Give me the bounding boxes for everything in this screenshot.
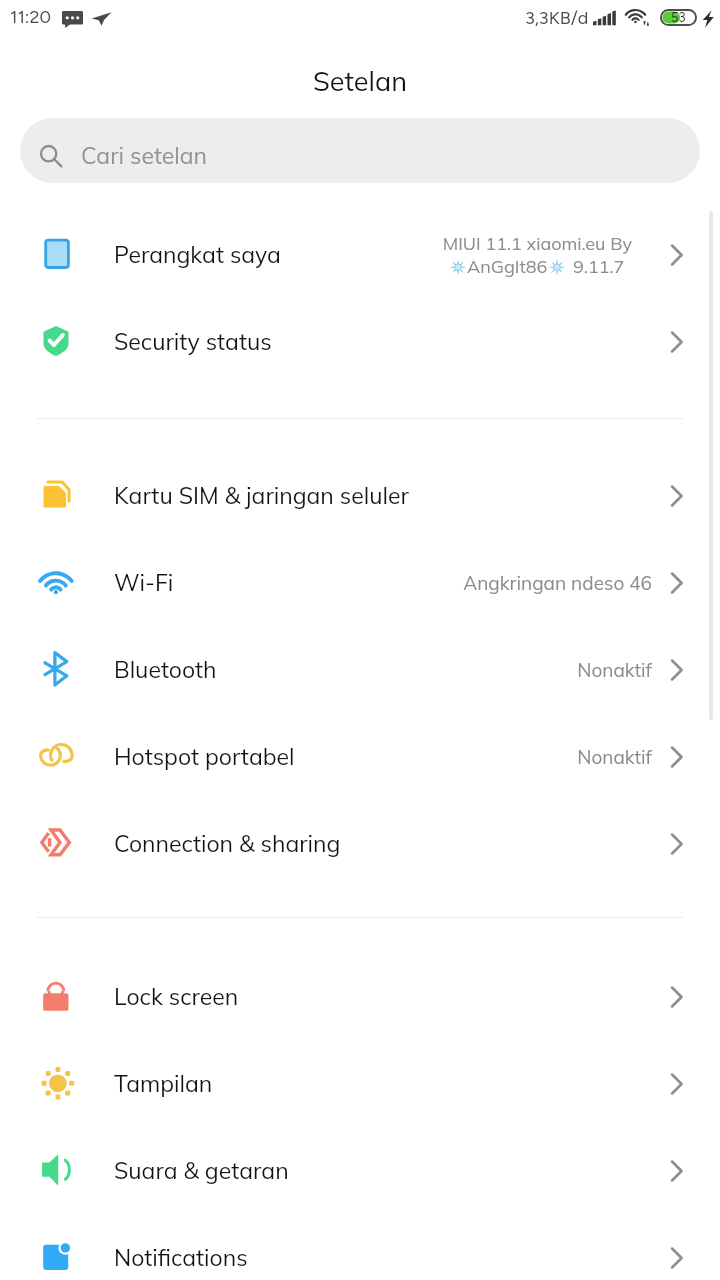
staticText: Nonaktif (577, 658, 652, 682)
button[interactable]: Security status (0, 298, 720, 385)
staticText: 53 (671, 10, 686, 26)
staticText: Connection & sharing (114, 829, 341, 858)
staticText: AnGgIt86 (467, 255, 548, 278)
staticText: Notifications (114, 1243, 248, 1272)
staticText: Suara & getaran (114, 1156, 289, 1185)
staticText: Bluetooth (114, 655, 217, 684)
staticText: Perangkat saya (114, 240, 281, 269)
button[interactable]: Tampilan (0, 1040, 720, 1127)
staticText: Kartu SIM & jaringan seluler (114, 481, 409, 510)
staticText: Angkringan ndeso 46 (463, 571, 652, 595)
staticText: Cari setelan (81, 141, 208, 170)
button[interactable]: Notifications (0, 1214, 720, 1280)
button[interactable]: Kartu SIM & jaringan seluler (0, 452, 720, 539)
staticText: Setelan (313, 64, 407, 98)
button[interactable]: Suara & getaran (0, 1127, 720, 1214)
staticText: 9.11.7 (573, 255, 625, 278)
staticText: Wi-Fi (114, 568, 174, 597)
staticText: Security status (114, 327, 272, 356)
staticText: Tampilan (114, 1069, 213, 1098)
button[interactable]: Hotspot portabel (0, 713, 720, 800)
staticText: 11:20 (10, 6, 52, 28)
staticText: Hotspot portabel (114, 742, 295, 771)
button[interactable]: Cari setelan (20, 118, 700, 183)
staticText: MIUI 11.1 xiaomi.eu By (442, 232, 632, 255)
staticText: Nonaktif (577, 745, 652, 769)
button[interactable]: Wi-Fi (0, 539, 720, 626)
staticText: 3,3KB/d (525, 7, 589, 29)
button[interactable]: Bluetooth (0, 626, 720, 713)
staticText: Lock screen (114, 982, 239, 1011)
button[interactable]: Connection & sharing (0, 800, 720, 887)
button[interactable]: Perangkat saya (0, 211, 720, 298)
button[interactable]: Lock screen (0, 953, 720, 1040)
